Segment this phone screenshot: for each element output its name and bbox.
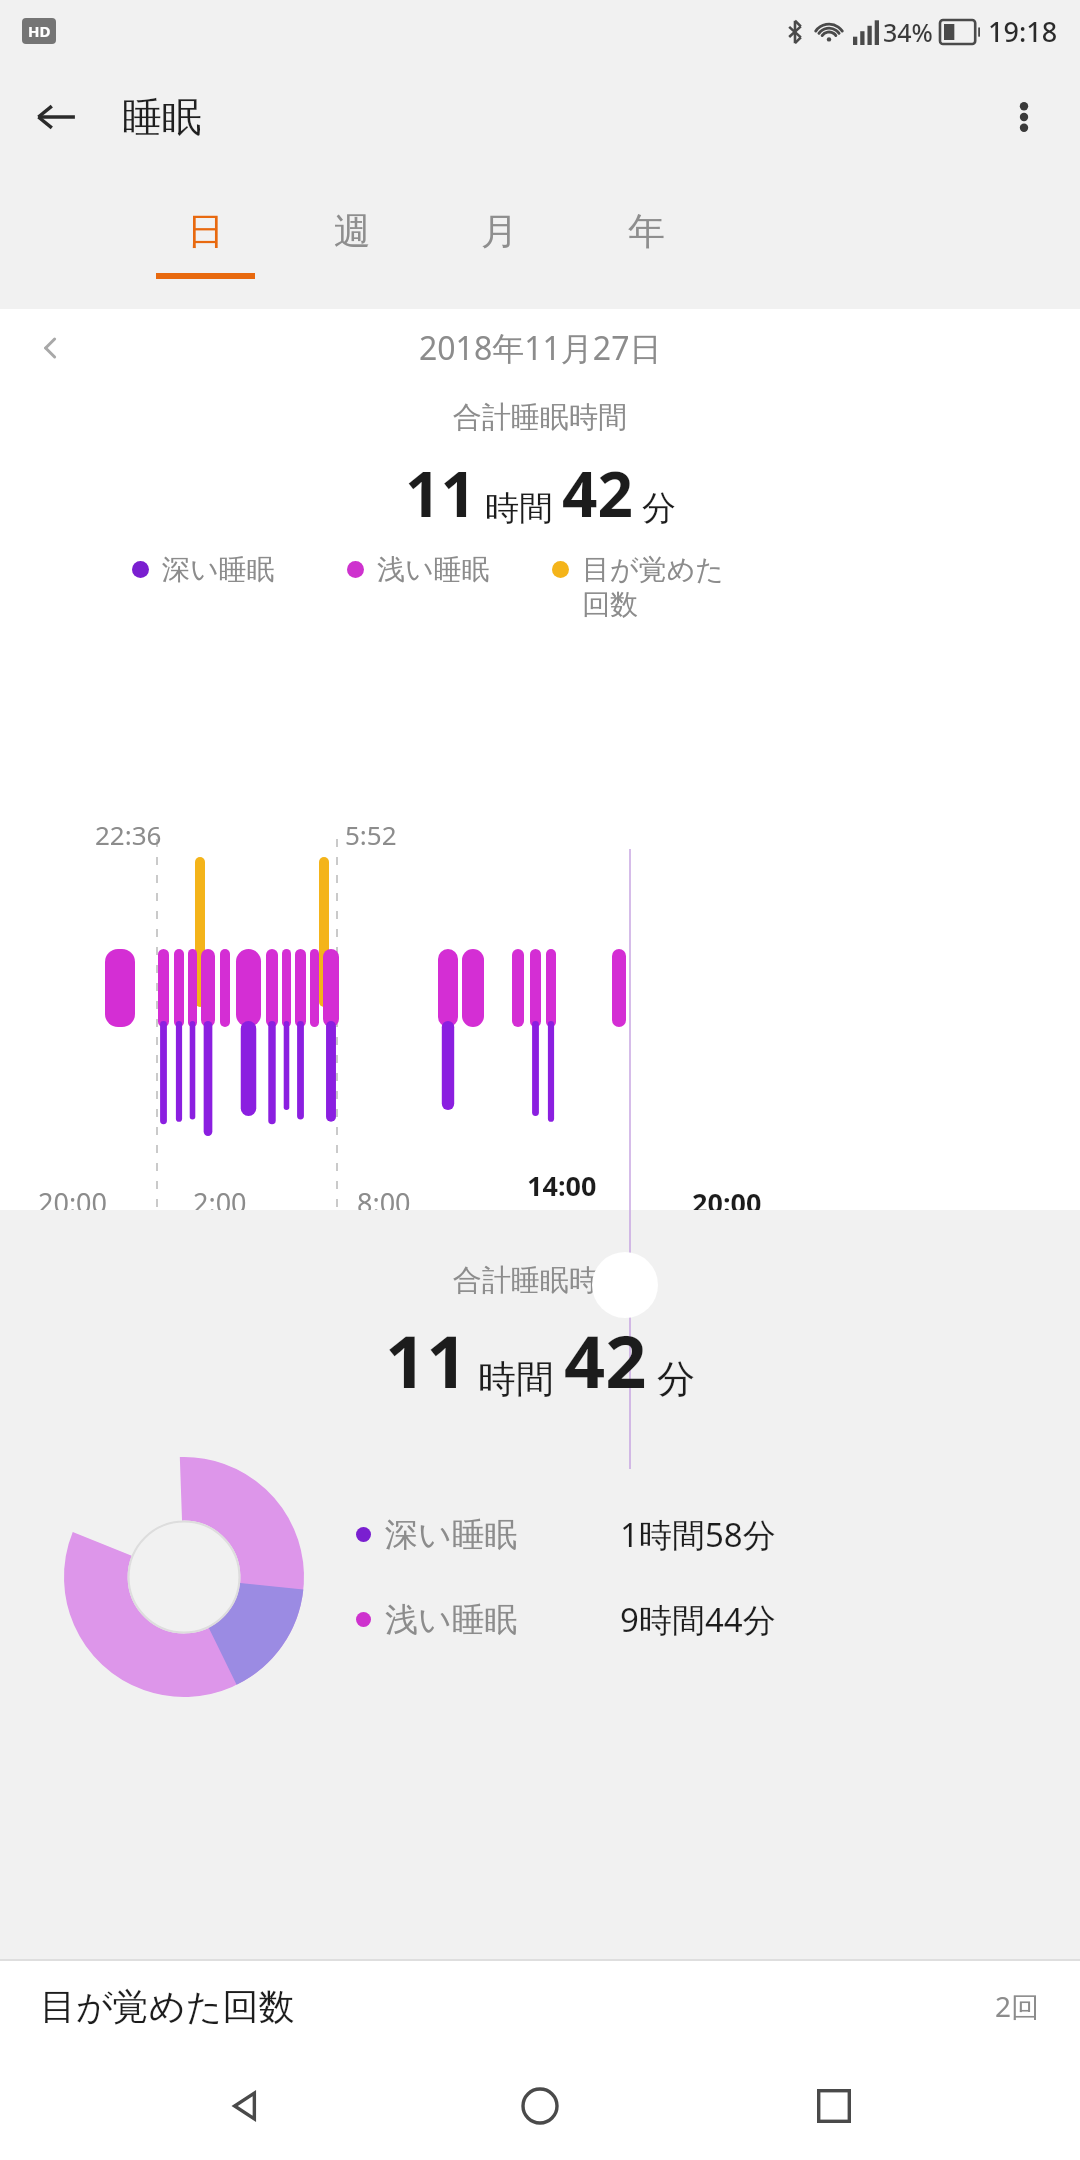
button[interactable]: Back [20,81,92,153]
staticText: 睡眠 [122,92,202,142]
staticText: 浅い睡眠 [385,1599,518,1641]
staticText: 日 [187,208,224,255]
staticText: 34% [883,15,933,49]
staticText: 11 [405,451,476,535]
button[interactable]: Home [492,2058,588,2154]
staticText: 42 [564,1311,647,1409]
button[interactable]: 浅い睡眠 [347,552,490,587]
staticText: 浅い睡眠 [377,552,490,587]
staticText: 20:00 [692,1184,762,1210]
staticText: 時間 [478,1355,554,1403]
staticText: 時間 [485,487,553,530]
button[interactable]: 深い睡眠 [132,552,275,587]
button[interactable]: 日 [132,172,279,309]
button[interactable]: 週 [279,172,426,309]
staticText: 20:00 [38,1184,108,1210]
staticText: 回数 [582,587,638,622]
button[interactable]: Back [198,2058,294,2154]
staticText: 目が覚めた回数 [40,1984,295,2029]
staticText: 合計睡眠時間 [453,1262,627,1299]
staticText: 深い睡眠 [385,1514,518,1556]
staticText: 深い睡眠 [162,552,275,587]
staticText: 9時間44分 [620,1597,776,1642]
staticText: 分 [642,487,676,530]
staticText: 1時間58分 [620,1512,776,1557]
button[interactable]: 目が覚めた [552,552,724,622]
staticText: 5:52 [345,817,397,852]
staticText: 目が覚めた [582,552,724,587]
staticText: 2:00 [193,1184,247,1210]
staticText: 週 [334,208,371,255]
staticText: 分 [657,1355,695,1403]
button[interactable]: 深い睡眠 [356,1512,776,1557]
staticText: 42 [562,451,633,535]
button[interactable]: More options [988,81,1060,153]
button[interactable]: 年 [573,172,720,309]
staticText: 年 [628,208,665,255]
button[interactable]: Previous day [20,317,82,379]
staticText: 11 [385,1311,468,1409]
staticText: 月 [481,208,518,255]
button[interactable]: 月 [426,172,573,309]
staticText: 19:18 [988,13,1058,50]
staticText: 2018年11月27日 [419,326,662,370]
button[interactable]: 浅い睡眠 [356,1597,776,1642]
staticText: 22:36 [95,817,162,852]
staticText: HD [28,21,51,41]
button[interactable]: 目が覚めた回数 [0,1960,1080,2052]
button[interactable]: Scroll handle [592,1252,658,1318]
button[interactable]: Recents [786,2058,882,2154]
staticText: 8:00 [357,1184,411,1210]
staticText: 14:00 [527,1167,597,1204]
staticText: 合計睡眠時間 [0,399,1080,436]
staticText: 2回 [995,1987,1040,2025]
